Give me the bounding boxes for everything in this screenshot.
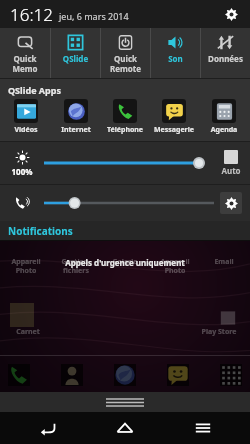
staticText: Play Store <box>194 327 244 337</box>
button[interactable]: Quick Remote <box>101 28 150 78</box>
staticText: Appareil Photo <box>153 257 197 275</box>
button[interactable] <box>114 364 136 386</box>
staticText: Appels d'urgence uniquement <box>65 257 185 268</box>
staticText: QSlide <box>51 53 100 64</box>
staticText: Internet <box>53 125 99 135</box>
staticText: Messagerie <box>151 125 197 135</box>
button[interactable]: Retour <box>18 412 78 444</box>
button[interactable] <box>61 364 83 386</box>
staticText: Auto <box>212 165 250 176</box>
button[interactable]: Téléphone <box>102 99 148 135</box>
button[interactable]: Notifications <box>0 221 250 241</box>
button[interactable]: Paramètres <box>220 3 242 25</box>
button[interactable]: Accueil <box>95 412 155 444</box>
staticText: Téléphone <box>102 125 148 135</box>
staticText: Carnet <box>6 327 50 337</box>
staticText: Quick Memo <box>0 53 50 74</box>
button[interactable] <box>220 364 242 386</box>
staticText: Appareil Photo <box>4 257 48 275</box>
button[interactable]: QSlide <box>51 28 100 78</box>
staticText: Galerie <box>103 257 147 267</box>
button[interactable]: Auto <box>212 150 250 176</box>
button[interactable] <box>167 364 189 386</box>
staticText: Gestion. fichiers <box>54 257 98 275</box>
button[interactable]: Données <box>201 28 250 78</box>
button[interactable]: Messagerie <box>151 99 197 135</box>
staticText: Quick Remote <box>101 53 150 74</box>
button[interactable] <box>44 191 214 215</box>
button[interactable] <box>0 185 44 221</box>
button[interactable] <box>44 148 208 178</box>
button[interactable]: Quick Memo <box>0 28 50 78</box>
button[interactable]: Menu <box>173 412 233 444</box>
staticText: Vidéos <box>3 125 49 135</box>
staticText: Son <box>151 53 200 64</box>
staticText: 16:12 <box>10 3 53 26</box>
staticText: jeu, 6 mars 2014 <box>59 10 129 22</box>
staticText: 100% <box>0 166 44 177</box>
button[interactable]: Internet <box>53 99 99 135</box>
staticText: Notifications <box>8 224 73 238</box>
button[interactable]: Son <box>151 28 200 78</box>
button[interactable]: Poignée <box>0 392 250 412</box>
button[interactable]: Vidéos <box>3 99 49 135</box>
button[interactable] <box>8 364 30 386</box>
staticText: Email <box>202 257 246 267</box>
staticText: Agenda <box>201 125 247 135</box>
staticText: Données <box>201 53 250 64</box>
staticText: QSlide Apps <box>8 84 61 96</box>
button[interactable]: Agenda <box>201 99 247 135</box>
button[interactable]: Paramètres du son <box>220 192 242 214</box>
button[interactable]: 100% <box>0 150 44 177</box>
